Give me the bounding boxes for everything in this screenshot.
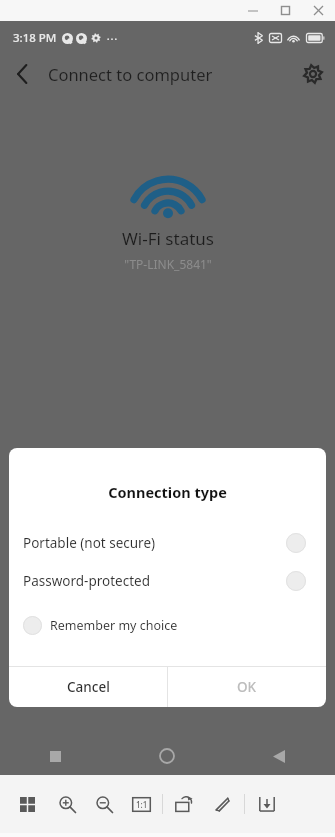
button[interactable]: Home [111, 737, 223, 775]
staticText: 1:1 [136, 799, 148, 810]
button[interactable]: Draw [209, 791, 235, 817]
staticText: Connection type [9, 482, 326, 502]
staticText: Portable (not secure) [23, 534, 286, 552]
button[interactable]: Minimize [237, 0, 269, 21]
button[interactable]: Remember my choice [9, 608, 326, 642]
button[interactable]: Back [223, 737, 335, 775]
button[interactable]: OK [168, 667, 326, 707]
staticText: Cancel [67, 678, 110, 696]
button[interactable]: Zoom in [54, 791, 80, 817]
button[interactable]: Close [301, 0, 335, 21]
button[interactable]: Recents [0, 737, 111, 775]
button[interactable]: Password-protected [9, 562, 326, 600]
staticText: Password-protected [23, 572, 286, 590]
button[interactable]: Zoom out [91, 791, 117, 817]
staticText: Wi-Fi status [122, 227, 214, 250]
button[interactable]: Maximize [269, 0, 301, 21]
button[interactable]: Rotate [171, 791, 197, 817]
button[interactable]: Save [254, 791, 280, 817]
button[interactable]: Actual size [128, 791, 154, 817]
staticText: 3:18 PM [13, 30, 57, 46]
button[interactable]: Grid view [14, 791, 40, 817]
staticText: Remember my choice [50, 617, 178, 634]
button[interactable]: Settings [291, 54, 335, 94]
staticText: Connect to computer [48, 63, 213, 85]
button[interactable]: Back [0, 54, 44, 94]
button[interactable]: Portable (not secure) [9, 524, 326, 562]
staticText: "TP-LINK_5841" [124, 256, 212, 272]
staticText: OK [237, 678, 257, 696]
button[interactable]: Cancel [9, 667, 167, 707]
